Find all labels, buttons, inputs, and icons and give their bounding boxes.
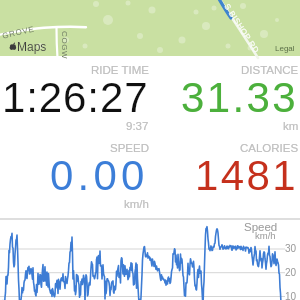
button[interactable]: CALORIES — [150, 134, 300, 199]
staticText: Maps — [17, 40, 47, 53]
staticText: 30 — [285, 243, 297, 254]
button[interactable]: Legal — [275, 44, 295, 53]
staticText: 0.00 — [50, 152, 149, 199]
button[interactable]: SPEED — [0, 134, 150, 211]
staticText: SPEED — [110, 142, 149, 155]
button[interactable]: RIDE TIME — [0, 56, 150, 133]
staticText: Speed — [244, 221, 278, 234]
staticText: GROVE — [1, 24, 36, 41]
button[interactable]: DISTANCE — [150, 56, 300, 133]
staticText: S BISHOP RD — [222, 2, 261, 55]
staticText: DISTANCE — [241, 64, 299, 77]
staticText: km/h — [255, 230, 276, 241]
staticText: 1481 — [195, 152, 299, 199]
staticText: 31.33 — [181, 74, 299, 121]
staticText: 20 — [285, 267, 297, 278]
staticText: 9:37 — [126, 120, 149, 133]
staticText: km/h — [124, 198, 149, 211]
staticText: RIDE TIME — [91, 64, 149, 77]
button[interactable]: Map — [0, 0, 300, 56]
staticText: km — [283, 120, 299, 133]
staticText: 10 — [285, 291, 297, 300]
staticText: CALORIES — [240, 142, 299, 155]
staticText: 1:26:27 — [2, 74, 149, 121]
staticText: COGW — [60, 31, 69, 60]
